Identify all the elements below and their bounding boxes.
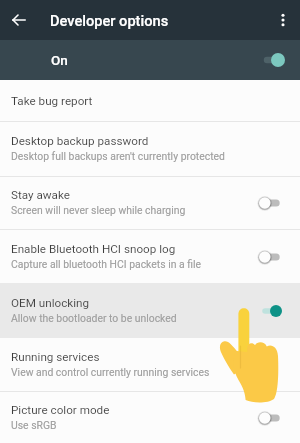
button[interactable]: Enable Bluetooth HCI snoop log xyxy=(0,230,300,283)
button[interactable]: On xyxy=(0,40,300,80)
button[interactable]: Desktop backup password xyxy=(0,122,300,176)
staticText: Use sRGB xyxy=(11,419,57,431)
staticText: On xyxy=(51,52,68,68)
staticText: Desktop backup password xyxy=(11,134,149,148)
staticText: View and control currently running servi… xyxy=(11,366,210,378)
button[interactable]: OEM unlocking xyxy=(0,283,300,338)
button[interactable]: Running services xyxy=(0,338,300,391)
button[interactable]: Picture color mode xyxy=(0,392,300,443)
staticText: Running services xyxy=(11,350,100,364)
staticText: Allow the bootloader to be unlocked xyxy=(11,312,177,324)
staticText: Screen will never sleep while charging xyxy=(11,204,186,216)
staticText: Desktop full backups aren't currently pr… xyxy=(11,150,225,162)
staticText: Stay awake xyxy=(11,188,70,202)
button[interactable]: Stay awake xyxy=(0,177,300,229)
staticText: OEM unlocking xyxy=(11,296,90,310)
staticText: Developer options xyxy=(50,12,169,29)
staticText: Take bug report xyxy=(11,94,93,108)
staticText: Enable Bluetooth HCI snoop log xyxy=(11,242,176,256)
button[interactable]: Back xyxy=(7,8,31,32)
button[interactable]: More options xyxy=(271,8,295,32)
staticText: Picture color mode xyxy=(11,403,110,417)
button[interactable]: Take bug report xyxy=(0,80,300,121)
staticText: Capture all bluetooth HCI packets in a f… xyxy=(11,258,202,270)
